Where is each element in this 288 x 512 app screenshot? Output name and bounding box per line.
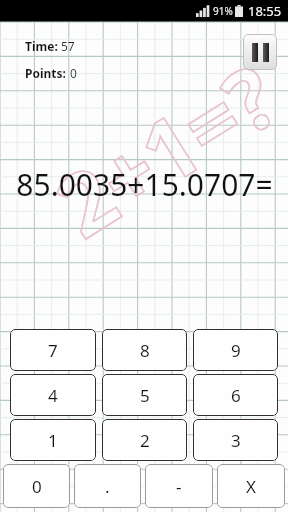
button[interactable]: X (217, 464, 285, 508)
staticText: 8 (140, 339, 150, 362)
button[interactable]: 2 (102, 419, 187, 461)
button[interactable]: 6 (193, 374, 278, 416)
staticText: 0 (32, 475, 42, 498)
staticText: 9 (231, 339, 241, 362)
staticText: 1 (48, 429, 58, 452)
staticText: 85.0035+15.0707= (16, 164, 273, 205)
staticText: 4 (48, 384, 58, 407)
staticText: Points: (25, 65, 70, 81)
staticText: 7 (48, 339, 58, 362)
staticText: 2+1=? (34, 37, 288, 262)
button[interactable]: . (74, 464, 141, 508)
staticText: 18:55 (248, 2, 282, 20)
button[interactable]: 8 (102, 329, 187, 371)
button[interactable]: - (145, 464, 213, 508)
button[interactable]: 3 (193, 419, 278, 461)
staticText: . (105, 475, 110, 498)
staticText: X (246, 475, 256, 498)
staticText: 6 (231, 384, 241, 407)
staticText: 91% (213, 4, 233, 18)
button[interactable]: 5 (102, 374, 187, 416)
button[interactable]: 1 (10, 419, 96, 461)
staticText: 0 (70, 65, 77, 81)
button[interactable]: 0 (3, 464, 70, 508)
staticText: 2 (140, 429, 150, 452)
button[interactable]: 7 (10, 329, 96, 371)
staticText: 57 (61, 38, 75, 54)
button[interactable]: Pause (243, 34, 277, 70)
staticText: Time: (25, 38, 61, 54)
button[interactable]: 4 (10, 374, 96, 416)
staticText: - (176, 475, 182, 498)
staticText: 3 (231, 429, 241, 452)
staticText: 5 (140, 384, 150, 407)
button[interactable]: 9 (193, 329, 278, 371)
